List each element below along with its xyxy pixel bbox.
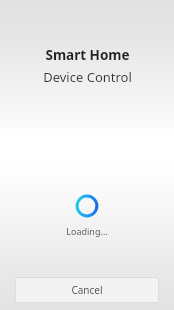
staticText: Device Control [43, 68, 132, 86]
staticText: Smart Home [45, 46, 130, 64]
button[interactable]: Cancel [15, 277, 159, 303]
staticText: Cancel [71, 283, 103, 297]
staticText: Loading... [66, 225, 108, 237]
